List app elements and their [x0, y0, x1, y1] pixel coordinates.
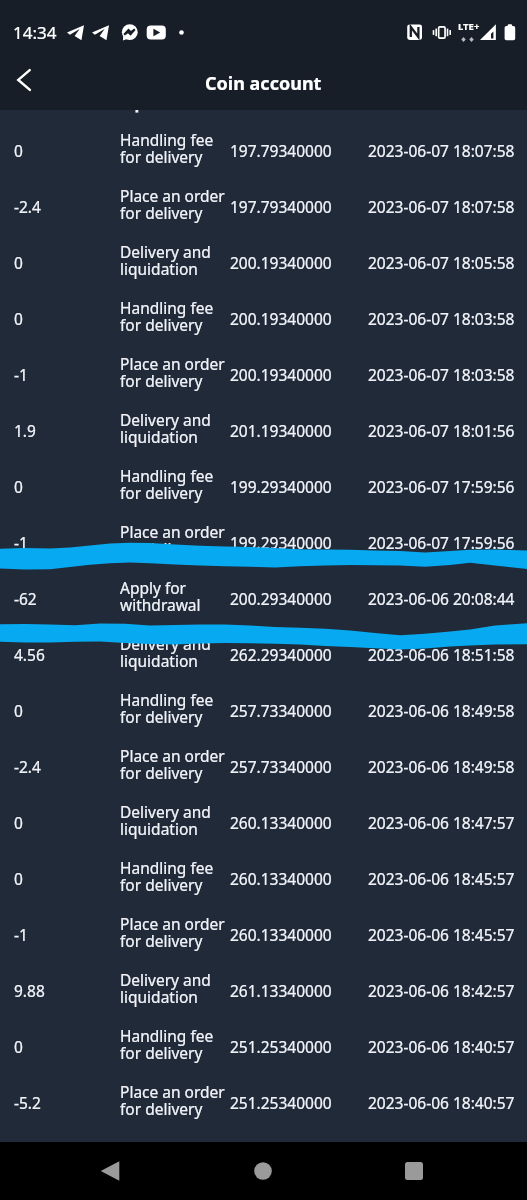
staticText: 2023-06-07 18:03:58: [368, 364, 515, 385]
staticText: Place an order for delivery: [120, 1081, 225, 1120]
staticText: 2023-06-06 18:45:57: [368, 924, 515, 945]
staticText: 0: [14, 1036, 23, 1057]
button[interactable]: 1.9: [0, 402, 527, 458]
button[interactable]: -1: [0, 346, 527, 402]
staticText: -2.4: [14, 196, 41, 217]
staticText: 1.9: [14, 420, 36, 441]
staticText: -1: [14, 532, 28, 553]
staticText: Handling fee for delivery: [120, 465, 214, 504]
staticText: 200.19340000: [230, 308, 332, 329]
staticText: 0: [14, 812, 23, 833]
button[interactable]: 0: [0, 1018, 527, 1074]
staticText: 2023-06-07 17:59:56: [368, 532, 515, 553]
staticText: Handling fee for delivery: [120, 129, 214, 168]
staticText: 257.73340000: [230, 756, 332, 777]
staticText: Handling fee for delivery: [120, 689, 214, 728]
staticText: 2023-06-06 18:49:58: [368, 700, 515, 721]
staticText: 0: [14, 308, 23, 329]
staticText: 251.25340000: [230, 1036, 332, 1057]
staticText: 2023-06-06 18:51:58: [368, 644, 515, 665]
button[interactable]: -2.4: [0, 178, 527, 234]
staticText: Place an order for delivery: [120, 745, 225, 784]
staticText: 4.56: [14, 644, 45, 665]
staticText: Delivery and liquidation: [120, 633, 211, 672]
staticText: Handling fee for delivery: [120, 297, 214, 336]
button[interactable]: 0: [0, 794, 527, 850]
staticText: 197.79340000: [230, 140, 332, 161]
button[interactable]: 0: [0, 458, 527, 514]
staticText: Place an order for delivery: [120, 185, 225, 224]
button[interactable]: 0: [0, 850, 527, 906]
staticText: 201.19340000: [230, 420, 332, 441]
staticText: Delivery and liquidation: [120, 409, 211, 448]
button[interactable]: Back: [0, 59, 48, 107]
staticText: 262.29340000: [230, 644, 332, 665]
button[interactable]: 0: [0, 234, 527, 290]
staticText: 2023-06-06 20:08:44: [368, 588, 515, 609]
staticText: Delivery and liquidation: [120, 969, 211, 1008]
staticText: Place an order for delivery: [120, 353, 225, 392]
staticText: 260.13340000: [230, 868, 332, 889]
staticText: -1: [14, 364, 28, 385]
button[interactable]: 0: [0, 122, 527, 178]
staticText: Place an order for delivery: [120, 521, 225, 560]
staticText: 197.79340000: [230, 196, 332, 217]
staticText: 0: [14, 868, 23, 889]
staticText: 0: [14, 140, 23, 161]
staticText: 251.25340000: [230, 1092, 332, 1113]
button[interactable]: -2.4: [0, 738, 527, 794]
staticText: 2023-06-07 18:05:58: [368, 252, 515, 273]
button[interactable]: 4.56: [0, 626, 527, 682]
staticText: -1: [14, 924, 28, 945]
staticText: 2023-06-06 18:40:57: [368, 1092, 515, 1113]
staticText: 2023-06-06 18:45:57: [368, 868, 515, 889]
button[interactable]: -62: [0, 570, 527, 626]
staticText: 2023-06-07 18:01:56: [368, 420, 515, 441]
button[interactable]: 0: [0, 290, 527, 346]
staticText: Delivery and liquidation: [120, 801, 211, 840]
button[interactable]: 9.88: [0, 962, 527, 1018]
staticText: 2023-06-06 18:40:57: [368, 1036, 515, 1057]
button[interactable]: Back: [86, 1147, 134, 1195]
staticText: 2023-06-07 18:07:58: [368, 196, 515, 217]
staticText: LTE+: [458, 20, 480, 33]
staticText: 199.29340000: [230, 476, 332, 497]
staticText: 257.73340000: [230, 700, 332, 721]
staticText: 200.29340000: [230, 588, 332, 609]
staticText: 2023-06-06 18:49:58: [368, 756, 515, 777]
staticText: 261.13340000: [230, 980, 332, 1001]
staticText: Place an order for delivery: [120, 913, 225, 952]
button[interactable]: 0: [0, 682, 527, 738]
button[interactable]: -1: [0, 906, 527, 962]
staticText: 2023-06-06 18:42:57: [368, 980, 515, 1001]
staticText: 2023-06-07 17:59:56: [368, 476, 515, 497]
staticText: -62: [14, 588, 37, 609]
staticText: Handling fee for delivery: [120, 1025, 214, 1064]
staticText: 0: [14, 252, 23, 273]
staticText: 199.29340000: [230, 532, 332, 553]
staticText: 14:34: [13, 21, 57, 44]
staticText: 0: [14, 476, 23, 497]
staticText: -5.2: [14, 1092, 41, 1113]
staticText: 2023-06-07 18:03:58: [368, 308, 515, 329]
staticText: Apply for withdrawal: [120, 577, 201, 616]
staticText: 2023-06-07 18:07:58: [368, 140, 515, 161]
staticText: -2.4: [14, 756, 41, 777]
staticText: 260.13340000: [230, 812, 332, 833]
staticText: 2023-06-06 18:47:57: [368, 812, 515, 833]
button[interactable]: -5.2: [0, 1074, 527, 1130]
staticText: 200.19340000: [230, 252, 332, 273]
button[interactable]: Recents: [390, 1147, 438, 1195]
staticText: 9.88: [14, 980, 45, 1001]
staticText: 200.19340000: [230, 364, 332, 385]
staticText: Delivery and liquidation: [120, 241, 211, 280]
staticText: Coin account: [205, 71, 322, 96]
staticText: 0: [14, 700, 23, 721]
staticText: 260.13340000: [230, 924, 332, 945]
staticText: Handling fee for delivery: [120, 857, 214, 896]
button[interactable]: Home: [239, 1147, 287, 1195]
button[interactable]: -1: [0, 514, 527, 570]
